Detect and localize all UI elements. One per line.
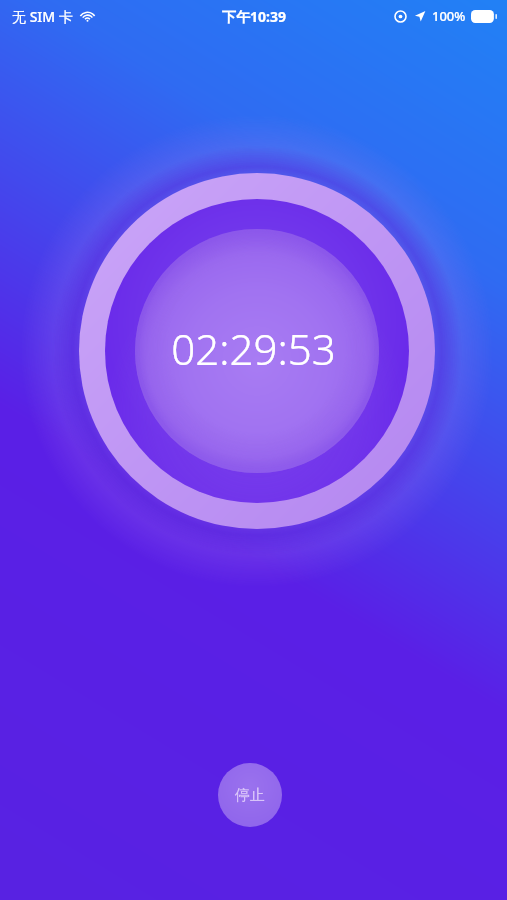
staticText: 02:29:53 (171, 320, 336, 377)
staticText: 停止 (235, 786, 265, 805)
button[interactable]: 停止 (218, 763, 282, 827)
staticText: 下午10:39 (222, 7, 286, 26)
staticText: 100% (432, 7, 466, 25)
staticText: 无 SIM 卡 (12, 7, 73, 26)
staticText: 02:29:53 (171, 320, 336, 377)
